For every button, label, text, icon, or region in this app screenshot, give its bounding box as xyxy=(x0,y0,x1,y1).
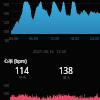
staticText: 24:00 xyxy=(90,36,99,41)
staticText: 140 xyxy=(3,83,10,88)
staticText: 心率 (bpm) xyxy=(4,58,27,64)
staticText: 140 xyxy=(3,11,10,16)
staticText: 80 xyxy=(5,38,10,43)
staticText: 160 xyxy=(3,2,10,7)
staticText: 平均 xyxy=(19,76,26,80)
staticText: 12:00 xyxy=(50,36,59,41)
staticText: 114 xyxy=(15,65,29,76)
staticText: 06:00 xyxy=(29,36,38,41)
staticText: 最大 xyxy=(63,76,70,80)
staticText: 120 xyxy=(3,20,10,25)
staticText: 138 xyxy=(59,65,73,76)
staticText: 100 xyxy=(3,29,10,34)
staticText: 18:00 xyxy=(70,36,79,41)
staticText: 00:00 xyxy=(9,36,18,41)
staticText: 100 xyxy=(3,91,10,96)
staticText: 2021-06-16 12:30 xyxy=(33,49,67,54)
